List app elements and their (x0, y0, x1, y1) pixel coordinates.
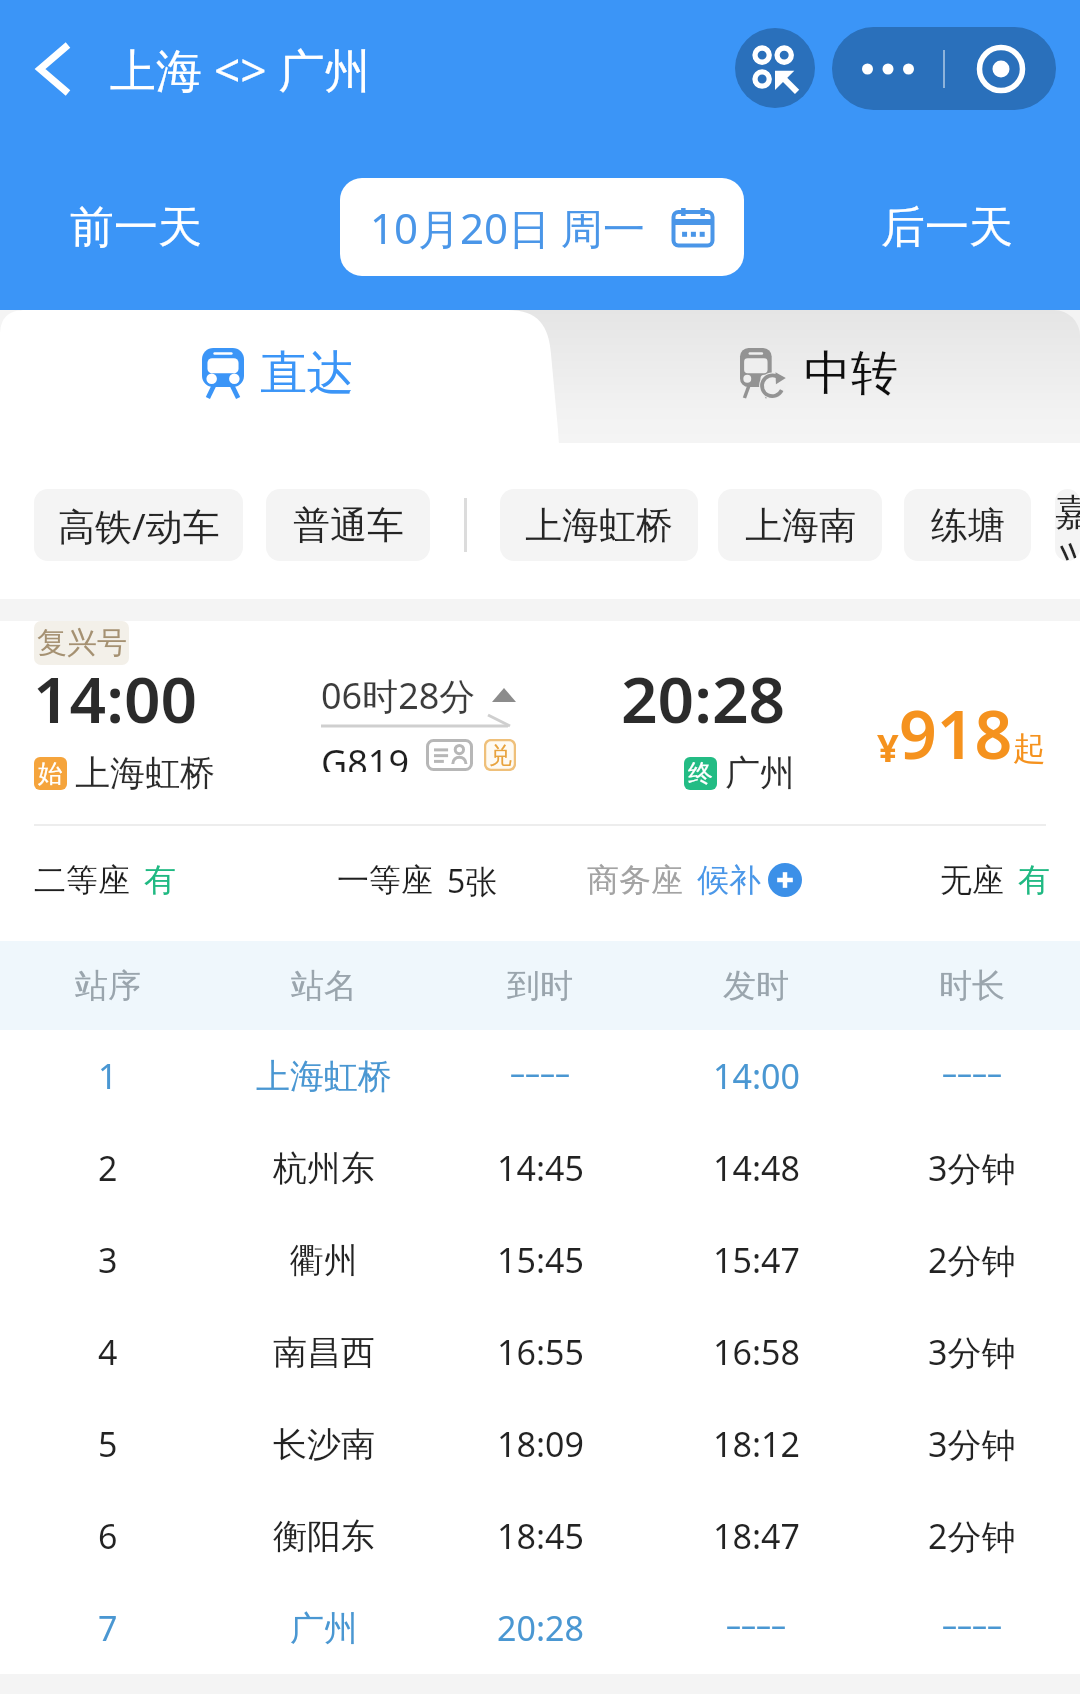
staticText: 广州 (725, 751, 795, 795)
staticText: 14:45 (497, 1145, 584, 1191)
staticText: 复兴号 (37, 624, 127, 662)
staticText: 20:28 (621, 655, 786, 742)
staticText: 直达 (260, 344, 354, 403)
staticText: 有 (1018, 860, 1050, 900)
staticText: 衡阳东 (273, 1515, 375, 1558)
staticText: 高铁/动车 (58, 500, 220, 551)
staticText: 后一天 (881, 200, 1013, 255)
staticText: 918 (899, 688, 1013, 778)
staticText: 14:48 (713, 1145, 800, 1191)
staticText: 嘉兴 (1055, 489, 1080, 561)
staticText: 二等座 (34, 860, 130, 900)
staticText: 14:00 (713, 1053, 800, 1099)
staticText: ¥ (877, 721, 899, 773)
staticText: 练塘 (931, 502, 1005, 549)
staticText: 商务座 (587, 860, 683, 900)
staticText: 长沙南 (273, 1423, 375, 1466)
staticText: 发时 (723, 965, 789, 1007)
button[interactable]: 上海南 (718, 489, 882, 561)
button[interactable]: 练塘 (904, 489, 1031, 561)
staticText: 到时 (507, 965, 573, 1007)
staticText: 18:45 (497, 1513, 584, 1559)
button[interactable]: Close (945, 27, 1056, 110)
staticText: 中转 (804, 344, 898, 403)
staticText: 无座 (940, 860, 1004, 900)
button[interactable]: 10月20日 周一 (340, 178, 744, 276)
staticText: 起 (1013, 728, 1046, 770)
button[interactable]: 3 (0, 1214, 1080, 1306)
staticText: 5 (98, 1421, 118, 1467)
staticText: 上海南 (745, 502, 856, 549)
staticText: 兑 (489, 741, 512, 770)
staticText: 18:47 (713, 1513, 800, 1559)
staticText: 上海虹桥 (75, 751, 215, 795)
staticText: 始 (38, 758, 63, 789)
staticText: 终 (688, 758, 713, 789)
staticText: 站名 (291, 965, 357, 1007)
staticText: 2分钟 (928, 1237, 1016, 1283)
button[interactable]: 6 (0, 1490, 1080, 1582)
button[interactable]: 中转 (560, 310, 1080, 443)
staticText: 16:58 (713, 1329, 800, 1375)
staticText: –––– (942, 1604, 1002, 1645)
staticText: 3 (98, 1237, 118, 1283)
staticText: 1 (98, 1053, 118, 1099)
button[interactable]: 复兴号 (0, 621, 1080, 941)
staticText: 4 (98, 1329, 118, 1375)
staticText: 3分钟 (928, 1145, 1016, 1191)
button[interactable]: 普通车 (266, 489, 430, 561)
staticText: –––– (942, 1052, 1002, 1093)
staticText: 06时28分 (321, 671, 476, 720)
staticText: –––– (726, 1604, 786, 1645)
button[interactable]: 5 (0, 1398, 1080, 1490)
staticText: 15:47 (713, 1237, 800, 1283)
staticText: 20:28 (497, 1605, 584, 1651)
staticText: 15:45 (497, 1237, 584, 1283)
button[interactable]: 2 (0, 1122, 1080, 1214)
staticText: 杭州东 (273, 1147, 375, 1190)
button[interactable]: Back (4, 19, 104, 119)
button[interactable]: More (832, 27, 943, 110)
staticText: 衢州 (290, 1239, 358, 1282)
button[interactable]: 上海虹桥 (500, 489, 698, 561)
button[interactable]: Mini program menu (735, 28, 815, 108)
staticText: G819 (321, 738, 409, 772)
staticText: 上海虹桥 (256, 1055, 392, 1098)
staticText: 18:09 (497, 1421, 584, 1467)
button[interactable]: 后一天 (814, 168, 1080, 286)
staticText: 站序 (75, 965, 141, 1007)
staticText: 10月20日 周一 (370, 199, 646, 256)
staticText: 2分钟 (928, 1513, 1016, 1559)
staticText: 5张 (447, 859, 498, 901)
button[interactable]: 4 (0, 1306, 1080, 1398)
staticText: 14:00 (33, 655, 198, 742)
staticText: 南昌西 (273, 1331, 375, 1374)
staticText: 有 (144, 860, 176, 900)
button[interactable]: 直达 (0, 310, 560, 443)
staticText: 时长 (939, 965, 1005, 1007)
staticText: 候补 (697, 860, 761, 900)
button[interactable]: 7 (0, 1582, 1080, 1674)
button[interactable]: 嘉兴 (1055, 489, 1080, 561)
staticText: 18:12 (713, 1421, 800, 1467)
staticText: 7 (98, 1605, 118, 1651)
staticText: 3分钟 (928, 1329, 1016, 1375)
staticText: 2 (98, 1145, 118, 1191)
staticText: 3分钟 (928, 1421, 1016, 1467)
button[interactable]: 高铁/动车 (34, 489, 243, 561)
staticText: 6 (98, 1513, 118, 1559)
staticText: 上海 <> 广州 (110, 38, 371, 101)
staticText: 上海虹桥 (525, 502, 673, 549)
staticText: 一等座 (337, 860, 433, 900)
staticText: 前一天 (70, 200, 202, 255)
staticText: 16:55 (497, 1329, 584, 1375)
button[interactable]: 1 (0, 1030, 1080, 1122)
staticText: 普通车 (293, 502, 404, 549)
button[interactable]: 前一天 (0, 168, 272, 286)
staticText: 广州 (290, 1607, 358, 1650)
staticText: –––– (510, 1052, 570, 1093)
